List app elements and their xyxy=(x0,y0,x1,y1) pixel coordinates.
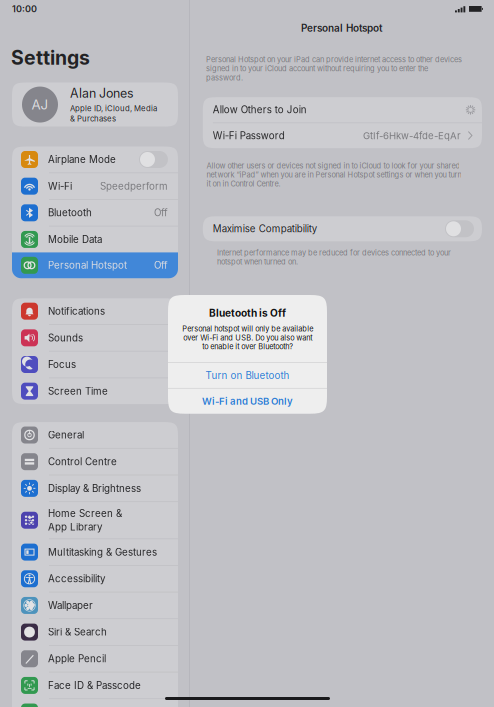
staticText: Personal hotspot will only be available … xyxy=(182,324,313,351)
button[interactable]: Wi-Fi xyxy=(12,173,178,199)
button[interactable]: AJ xyxy=(12,83,178,127)
staticText: Bluetooth xyxy=(48,207,92,219)
staticText: & Purchases xyxy=(70,114,116,123)
staticText: Bluetooth is Off xyxy=(209,307,286,319)
staticText: Screen Time xyxy=(48,385,108,397)
staticText: Focus xyxy=(48,359,76,370)
button[interactable]: General xyxy=(12,422,178,448)
staticText: Notifications xyxy=(48,305,105,317)
staticText: Multitasking & Gestures xyxy=(48,546,157,558)
staticText: Display & Brightness xyxy=(48,482,141,494)
button[interactable]: Wi-Fi and USB Only xyxy=(168,389,327,414)
staticText: Personal Hotspot xyxy=(301,22,383,34)
button[interactable]: Sounds xyxy=(12,325,178,351)
staticText: Airplane Mode xyxy=(48,154,116,165)
button[interactable]: Allow Others to Join xyxy=(203,97,482,122)
staticText: Off xyxy=(154,207,168,219)
button[interactable]: Airplane Mode xyxy=(12,147,178,172)
button[interactable]: Apple Pencil xyxy=(12,646,178,672)
button[interactable]: Focus xyxy=(12,352,178,377)
staticText: App Library xyxy=(48,521,102,533)
button[interactable]: Wi-Fi Password xyxy=(203,123,482,148)
staticText: Apple Pencil xyxy=(48,653,106,665)
staticText: General xyxy=(48,429,84,441)
staticText: Home Screen & xyxy=(48,507,122,519)
button[interactable]: Control Centre xyxy=(12,449,178,475)
button[interactable]: Home Screen & xyxy=(12,502,178,538)
staticText: AJ xyxy=(31,96,48,113)
button[interactable]: Notifications xyxy=(12,298,178,324)
staticText: Personal Hotspot on your iPad can provid… xyxy=(206,55,462,82)
staticText: Internet performance may be reduced for … xyxy=(217,248,451,266)
staticText: Maximise Compatibility xyxy=(213,223,317,235)
staticText: Siri & Search xyxy=(48,626,107,638)
staticText: Allow other users or devices not signed … xyxy=(206,161,461,188)
staticText: Accessibility xyxy=(48,573,105,585)
button[interactable]: Screen Time xyxy=(12,378,178,404)
staticText: Alan Jones xyxy=(70,86,134,101)
button[interactable]: Siri & Search xyxy=(12,619,178,645)
staticText: Settings xyxy=(11,46,90,70)
staticText: GtIf-6Hkw-4fde-EqAr xyxy=(363,130,461,141)
button[interactable]: Accessibility xyxy=(12,566,178,592)
button[interactable]: Multitasking & Gestures xyxy=(12,539,178,565)
button[interactable]: Mobile Data xyxy=(12,226,178,252)
staticText: Personal Hotspot xyxy=(48,259,127,271)
staticText: Control Centre xyxy=(48,456,117,468)
staticText: Wi-Fi Password xyxy=(213,130,285,142)
staticText: Wi-Fi and USB Only xyxy=(202,395,293,407)
staticText: Speedperform xyxy=(100,180,168,192)
staticText: Apple ID, iCloud, Media xyxy=(70,104,157,113)
staticText: Allow Others to Join xyxy=(213,104,307,116)
staticText: Sounds xyxy=(48,332,83,344)
button[interactable]: Battery xyxy=(12,699,178,707)
button[interactable]: Display & Brightness xyxy=(12,475,178,501)
button[interactable]: Turn on Bluetooth xyxy=(168,363,327,388)
button[interactable]: Maximise Compatibility xyxy=(203,216,482,241)
staticText: Wi-Fi xyxy=(48,180,72,192)
staticText: Turn on Bluetooth xyxy=(205,369,289,381)
button[interactable]: Bluetooth xyxy=(12,200,178,226)
staticText: Face ID & Passcode xyxy=(48,679,141,691)
staticText: Off xyxy=(154,259,168,271)
button[interactable]: Personal Hotspot xyxy=(12,252,178,278)
staticText: Mobile Data xyxy=(48,234,102,245)
button[interactable]: Wallpaper xyxy=(12,592,178,618)
staticText: Wallpaper xyxy=(48,599,93,611)
button[interactable]: Face ID & Passcode xyxy=(12,672,178,698)
staticText: 10:00 xyxy=(12,3,37,14)
